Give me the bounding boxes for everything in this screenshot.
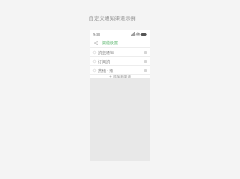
staticText: 营销 · 推 <box>98 68 114 73</box>
button[interactable]: 营销 · 推 <box>90 66 150 74</box>
button[interactable]: Share <box>93 40 99 46</box>
staticText: 订阅消 <box>98 59 110 64</box>
staticText: 9:30 <box>93 32 100 37</box>
button[interactable]: 消息通知 <box>90 48 150 56</box>
staticText: 自定义通知渠道示例 <box>89 15 136 21</box>
staticText: 消息通知 <box>98 50 114 55</box>
button[interactable]: 订阅消 <box>90 57 150 65</box>
button[interactable]: 添加新渠道 <box>90 75 150 78</box>
button[interactable]: 渠道设置 <box>101 40 119 45</box>
staticText: 渠道设置 <box>102 40 118 45</box>
staticText: 添加新渠道 <box>113 75 131 78</box>
